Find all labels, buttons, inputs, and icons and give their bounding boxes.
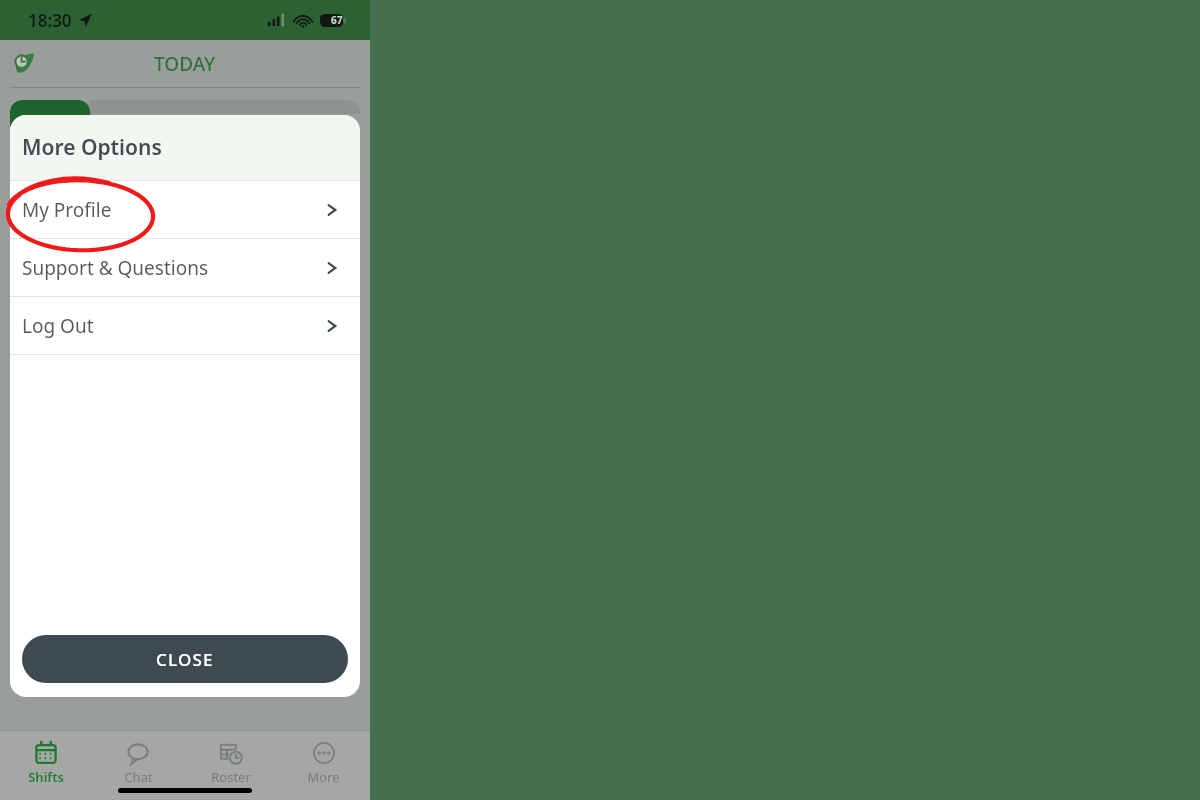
button[interactable]: Chat [92, 739, 184, 788]
staticText: 67 [331, 13, 343, 27]
other: Shifts [34, 741, 58, 765]
staticText: More Options [22, 133, 162, 162]
staticText: TODAY [154, 51, 216, 77]
button[interactable]: My Profile [10, 181, 360, 238]
staticText: More [307, 768, 340, 786]
other: Chat [126, 741, 150, 765]
staticText: Log Out [22, 313, 94, 339]
button[interactable]: More [277, 739, 370, 788]
button[interactable]: Log Out [10, 297, 360, 354]
other: More [312, 741, 336, 765]
button[interactable]: CLOSE [22, 635, 348, 683]
staticText: Support & Questions [22, 255, 209, 281]
button[interactable]: Roster [184, 739, 277, 788]
staticText: CLOSE [156, 648, 214, 671]
staticText: 18:30 [28, 9, 72, 32]
staticText: Roster [211, 768, 251, 786]
other: Roster [219, 741, 243, 765]
button[interactable]: Support & Questions [10, 239, 360, 296]
staticText: My Profile [22, 197, 112, 223]
staticText: Shifts [28, 768, 64, 786]
button[interactable]: Shifts [0, 739, 92, 788]
staticText: Chat [124, 768, 153, 786]
